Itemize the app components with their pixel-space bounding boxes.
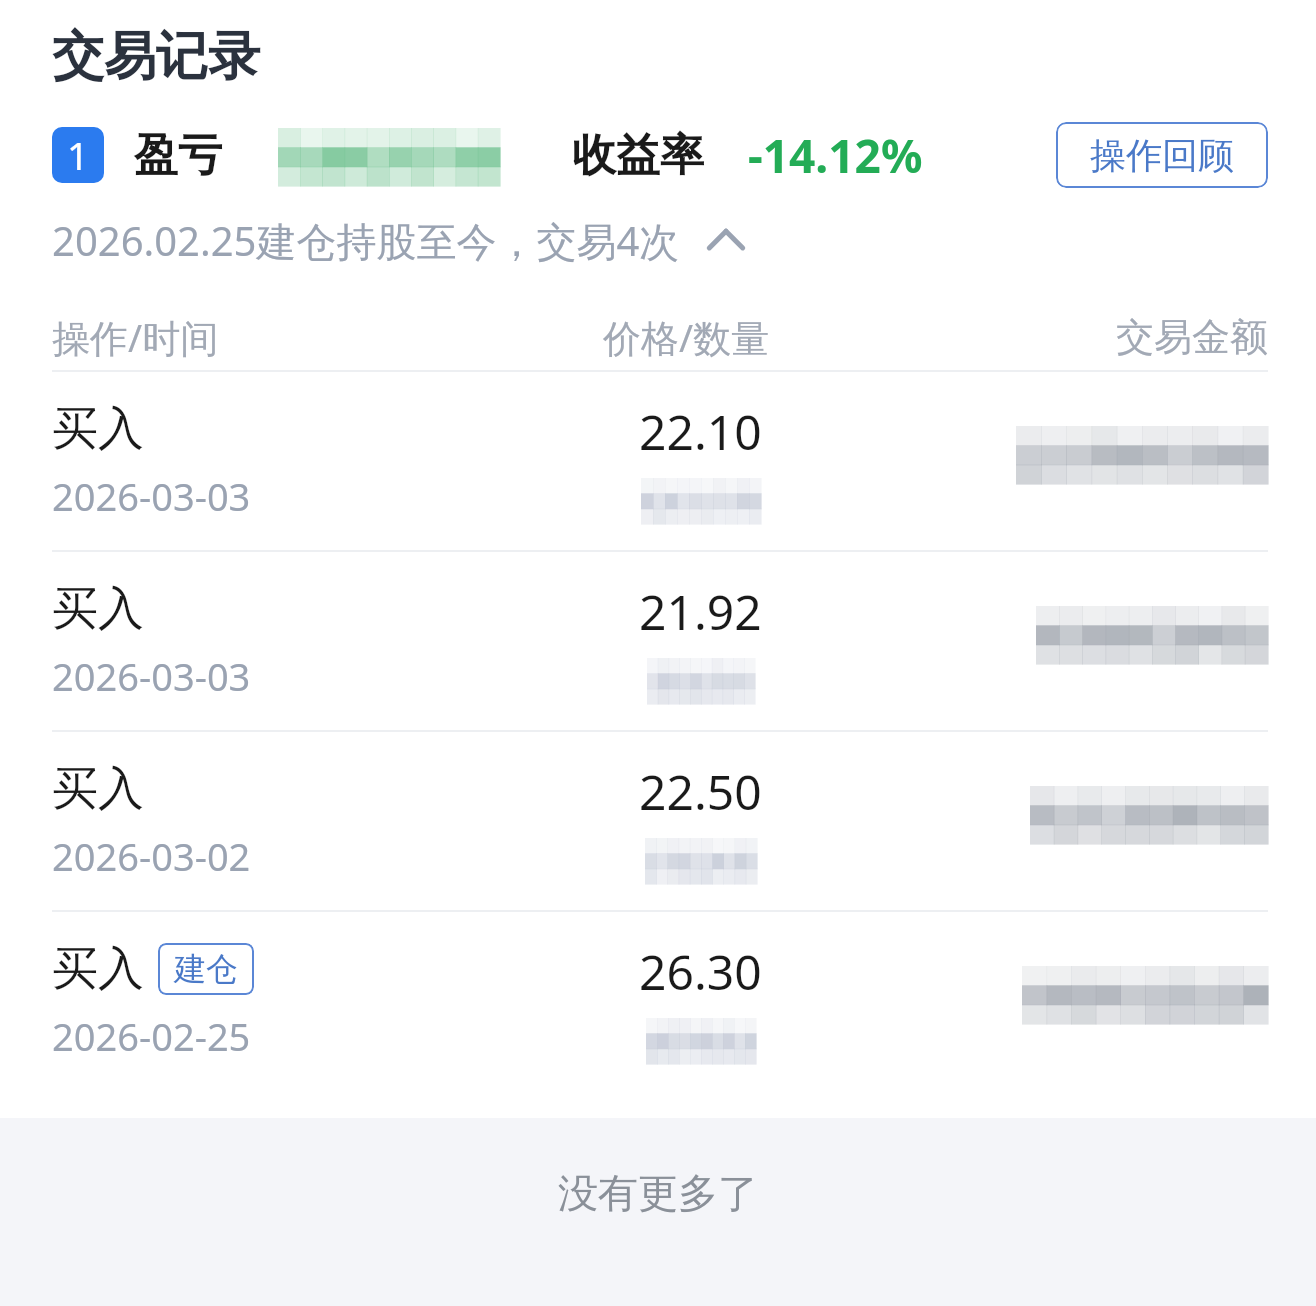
button[interactable]: 买入 — [0, 552, 1316, 730]
button[interactable]: 2026.02.25建仓持股至今，交易4次 — [0, 200, 1316, 280]
staticText: 建仓 — [174, 949, 238, 989]
staticText: 没有更多了 — [558, 1168, 758, 1218]
staticText: 2026-02-25 — [52, 1010, 251, 1062]
staticText: 操作回顾 — [1090, 133, 1234, 178]
other: Collapse — [704, 218, 748, 262]
button[interactable]: 买入 — [0, 912, 1316, 1090]
staticText: 收益率 — [572, 128, 704, 183]
staticText: 2026-03-02 — [52, 830, 251, 882]
staticText: 价格/数量 — [603, 311, 770, 363]
staticText: 买入 — [52, 940, 144, 998]
button[interactable]: 操作回顾 — [1056, 122, 1268, 188]
staticText: -14.12% — [748, 124, 923, 187]
staticText: 1 — [67, 129, 89, 181]
staticText: 21.92 — [639, 579, 762, 644]
staticText: 交易金额 — [1116, 313, 1268, 361]
staticText: 2026-03-03 — [52, 650, 251, 702]
staticText: 2026-03-03 — [52, 470, 251, 522]
staticText: 盈亏 — [134, 128, 222, 183]
staticText: 买入 — [52, 400, 144, 458]
staticText: 买入 — [52, 760, 144, 818]
staticText: 22.50 — [639, 759, 762, 824]
staticText: 交易记录 — [52, 24, 260, 90]
staticText: 买入 — [52, 580, 144, 638]
staticText: 2026.02.25建仓持股至今，交易4次 — [52, 213, 680, 268]
staticText: 22.10 — [639, 399, 762, 464]
button[interactable]: 买入 — [0, 732, 1316, 910]
staticText: 26.30 — [639, 939, 762, 1004]
button[interactable]: 买入 — [0, 372, 1316, 550]
staticText: 操作/时间 — [52, 311, 219, 363]
